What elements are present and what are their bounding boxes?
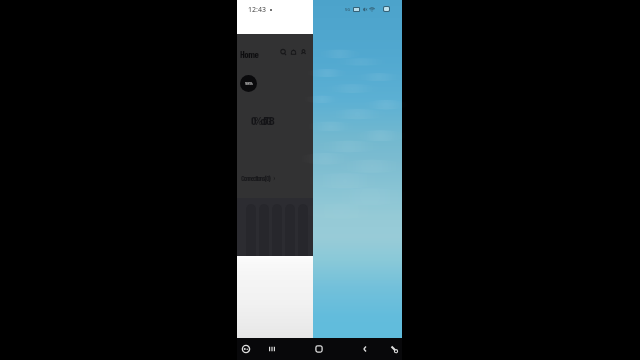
button[interactable]: Home [314,344,324,354]
button[interactable]: Accessibility [241,344,251,354]
staticText: 5G [345,7,351,12]
button[interactable]: Connections (0) [241,173,277,183]
button[interactable]: Screenshot [389,344,399,354]
button[interactable]: Search [279,48,288,57]
staticText: 0% of 7GB [251,113,273,127]
staticText: 12:43 [248,5,266,15]
staticText: Connections (0) [241,173,270,183]
button[interactable]: Notifications [289,48,298,57]
staticText: 98% [245,81,253,86]
button[interactable]: Profile [299,48,308,57]
button[interactable]: 98% [240,75,257,92]
button[interactable]: Recents [267,344,277,354]
staticText: Home [240,48,259,60]
button[interactable]: Back [360,344,370,354]
